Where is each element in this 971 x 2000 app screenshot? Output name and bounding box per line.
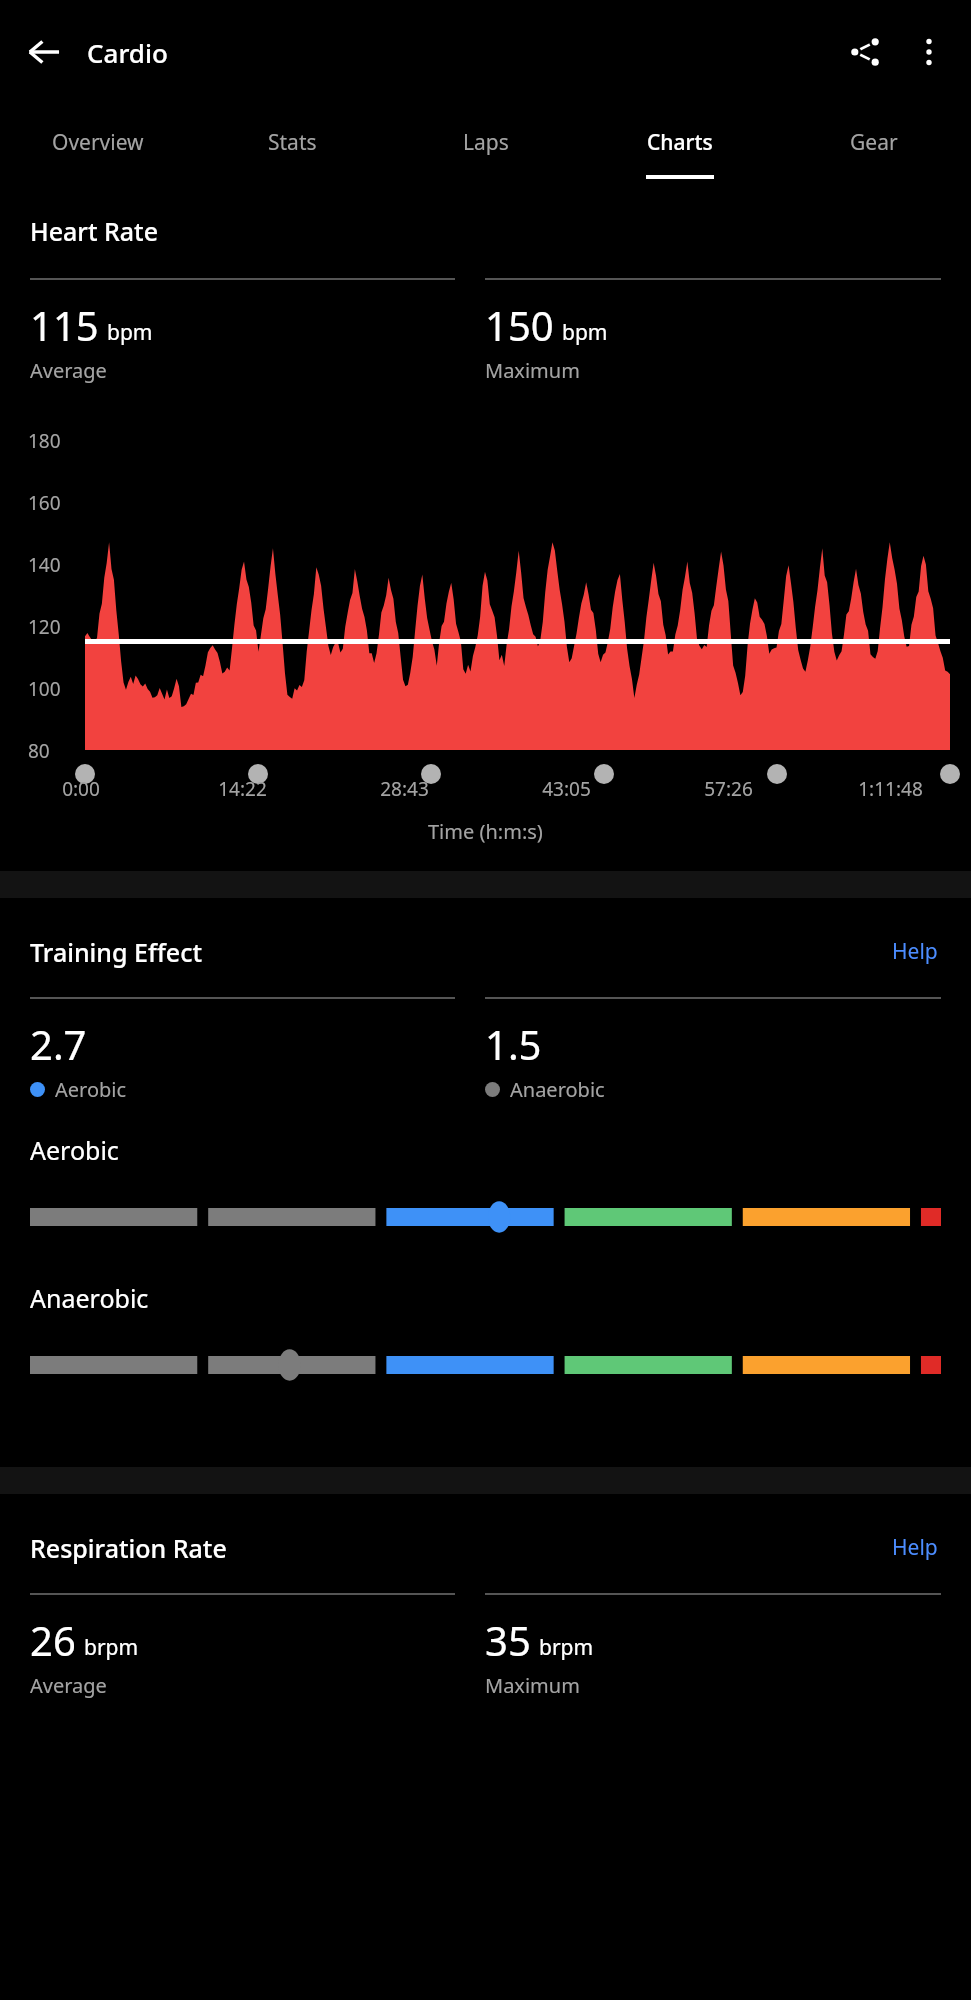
button[interactable]: Share — [833, 20, 897, 84]
staticText: Cardio — [87, 35, 168, 70]
staticText: Respiration Rate — [30, 1531, 227, 1565]
staticText: 1:11:48 — [858, 776, 923, 802]
staticText: Help — [892, 1533, 938, 1562]
button[interactable]: Gear — [777, 104, 971, 198]
staticText: 140 — [28, 552, 61, 578]
staticText: Maximum — [485, 1672, 580, 1699]
staticText: Stats — [268, 128, 317, 157]
button[interactable]: Overview — [0, 104, 195, 198]
staticText: Training Effect — [30, 935, 202, 969]
staticText: Anaerobic — [30, 1281, 149, 1315]
staticText: Laps — [463, 128, 509, 157]
staticText: 115 — [30, 298, 99, 352]
staticText: Gear — [850, 128, 898, 157]
button[interactable]: Help — [889, 1530, 941, 1565]
staticText: 14:22 — [218, 776, 267, 802]
staticText: Maximum — [485, 357, 580, 384]
staticText: 2.7 — [30, 1017, 87, 1071]
staticText: Time (h:m:s) — [428, 818, 543, 845]
staticText: 180 — [28, 428, 61, 454]
staticText: bpm — [107, 318, 153, 347]
staticText: 43:05 — [542, 776, 591, 802]
staticText: 28:43 — [380, 776, 429, 802]
staticText: Heart Rate — [30, 214, 159, 248]
staticText: 100 — [28, 676, 61, 702]
staticText: Average — [30, 1672, 107, 1699]
staticText: 120 — [28, 614, 61, 640]
staticText: Anaerobic — [510, 1076, 605, 1103]
staticText: Overview — [52, 128, 144, 157]
button[interactable]: More options — [897, 20, 961, 84]
button[interactable]: Stats — [195, 104, 389, 198]
staticText: Aerobic — [30, 1133, 119, 1167]
staticText: Average — [30, 357, 107, 384]
button[interactable]: Laps — [389, 104, 583, 198]
staticText: Charts — [647, 128, 713, 157]
button[interactable]: Back — [12, 20, 76, 84]
staticText: Help — [892, 937, 938, 966]
staticText: 35 — [485, 1613, 531, 1667]
staticText: 1.5 — [485, 1017, 542, 1071]
button[interactable] — [30, 1189, 941, 1245]
staticText: bpm — [562, 318, 608, 347]
button[interactable]: Help — [889, 934, 941, 969]
staticText: 0:00 — [62, 776, 100, 802]
staticText: 80 — [28, 738, 50, 764]
staticText: brpm — [84, 1633, 139, 1662]
button[interactable] — [30, 1337, 941, 1393]
staticText: brpm — [539, 1633, 594, 1662]
staticText: 26 — [30, 1613, 76, 1667]
staticText: Aerobic — [55, 1076, 127, 1103]
staticText: 150 — [485, 298, 554, 352]
button[interactable]: Charts — [583, 104, 777, 198]
staticText: 160 — [28, 490, 61, 516]
staticText: 57:26 — [704, 776, 753, 802]
